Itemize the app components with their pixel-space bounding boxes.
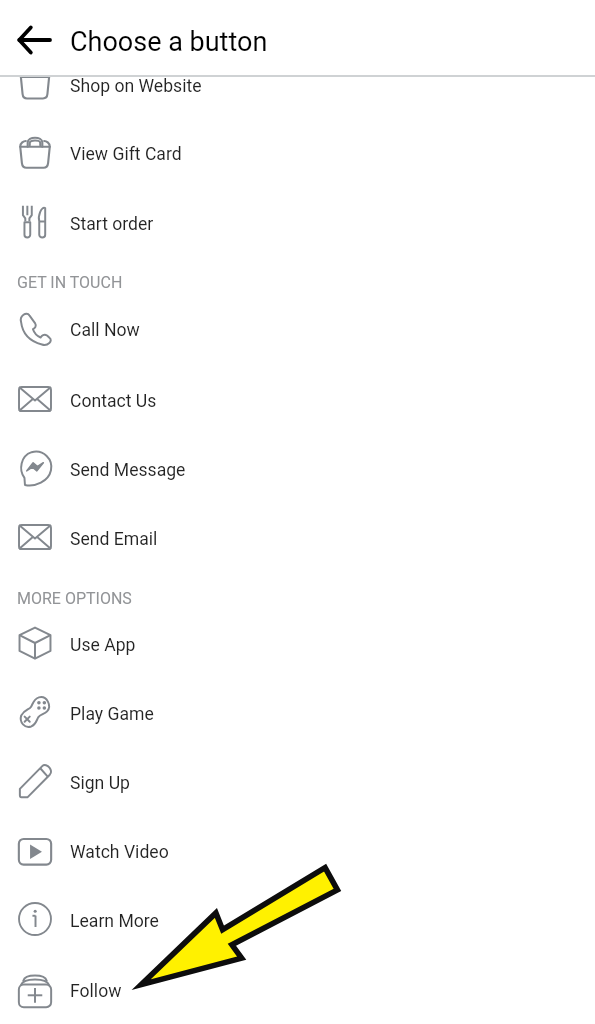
- staticText: Choose a button: [70, 26, 268, 58]
- button[interactable]: Use App: [0, 611, 595, 680]
- button[interactable]: Call Now: [0, 296, 595, 365]
- button[interactable]: Send Message: [0, 436, 595, 505]
- staticText: Watch Video: [70, 842, 169, 863]
- staticText: MORE OPTIONS: [17, 589, 132, 608]
- staticText: View Gift Card: [70, 144, 182, 165]
- button[interactable]: Contact Us: [0, 367, 595, 436]
- button[interactable]: Back: [10, 16, 58, 64]
- staticText: Use App: [70, 635, 136, 656]
- button[interactable]: Sign Up: [0, 749, 595, 818]
- staticText: Start order: [70, 214, 154, 235]
- button[interactable]: View Gift Card: [0, 120, 595, 189]
- button[interactable]: Shop on Website: [0, 52, 595, 121]
- button[interactable]: Send Email: [0, 505, 595, 574]
- button[interactable]: Play Game: [0, 680, 595, 749]
- staticText: Play Game: [70, 704, 154, 725]
- staticText: Call Now: [70, 320, 140, 341]
- staticText: Contact Us: [70, 391, 157, 412]
- staticText: Sign Up: [70, 773, 130, 794]
- staticText: Learn More: [70, 911, 159, 932]
- staticText: Send Message: [70, 460, 186, 481]
- button[interactable]: Start order: [0, 190, 595, 259]
- button[interactable]: Learn More: [0, 887, 595, 956]
- staticText: GET IN TOUCH: [17, 273, 123, 292]
- staticText: Follow: [70, 981, 122, 1002]
- staticText: Shop on Website: [70, 76, 202, 97]
- button[interactable]: Follow: [0, 957, 595, 1024]
- staticText: Send Email: [70, 529, 158, 550]
- button[interactable]: Watch Video: [0, 818, 595, 887]
